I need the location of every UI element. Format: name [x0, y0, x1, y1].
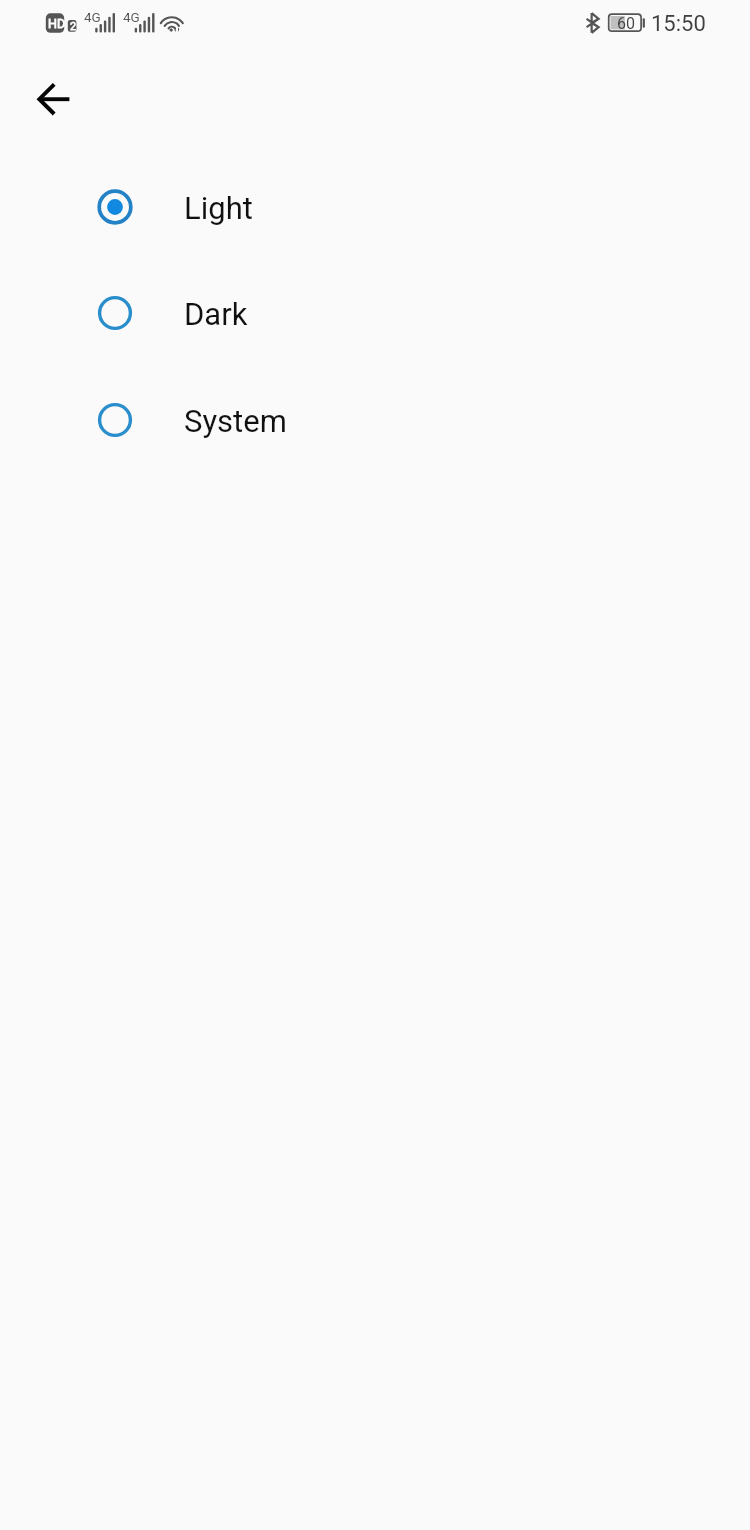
staticText: HD: [48, 16, 66, 31]
staticText: 4G: [123, 9, 140, 25]
staticText: Dark: [184, 296, 248, 332]
staticText: 2: [70, 20, 77, 33]
toggle[interactable]: Light: [0, 154, 750, 260]
staticText: 4G: [84, 9, 101, 25]
staticText: 15:50: [651, 11, 706, 37]
toggle[interactable]: Dark: [0, 260, 750, 366]
staticText: Light: [184, 190, 253, 226]
staticText: System: [184, 403, 287, 439]
staticText: 60: [617, 14, 635, 33]
toggle[interactable]: System: [0, 367, 750, 473]
button[interactable]: Back: [18, 63, 90, 135]
